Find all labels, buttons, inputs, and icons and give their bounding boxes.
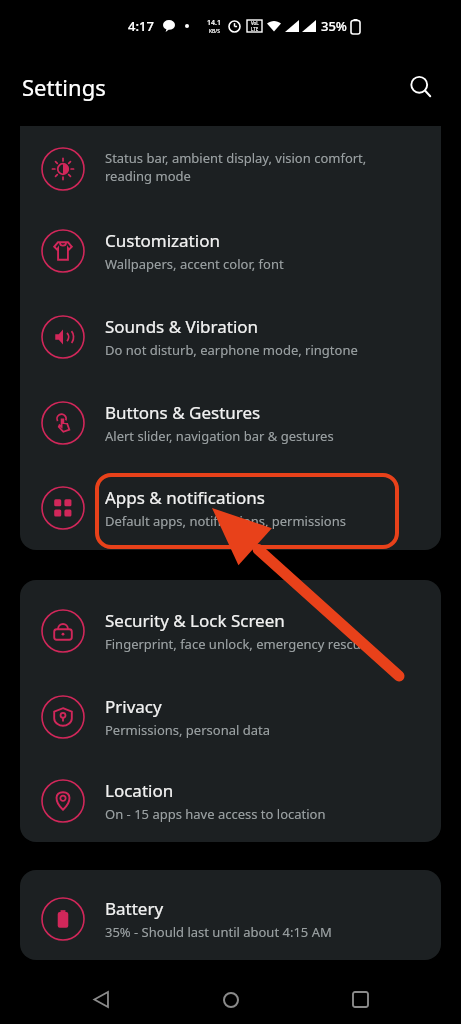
button[interactable]: Privacy	[20, 674, 441, 760]
staticText: Settings	[22, 72, 106, 102]
staticText: 4:17	[128, 17, 154, 35]
staticText: On - 15 apps have access to location	[105, 805, 326, 823]
staticText: Do not disturb, earphone mode, ringtone	[105, 341, 358, 359]
button[interactable]: Back	[72, 975, 130, 1024]
staticText: VoL	[251, 20, 259, 26]
staticText: LTE	[251, 26, 259, 32]
staticText: Status bar, ambient display, vision comf…	[105, 149, 367, 185]
staticText: 35%	[321, 17, 347, 35]
staticText: Default apps, notifications, permissions	[105, 512, 346, 530]
button[interactable]: Customization	[20, 208, 441, 294]
staticText: Privacy	[105, 695, 162, 718]
button[interactable]: Recent apps	[331, 975, 389, 1024]
staticText: 35% - Should last until about 4:15 AM	[105, 923, 332, 941]
button[interactable]: Status bar, ambient display, vision comf…	[20, 126, 441, 208]
button[interactable]: Security & Lock Screen	[20, 588, 441, 674]
staticText: Alert slider, navigation bar & gestures	[105, 427, 334, 445]
button[interactable]: Battery	[20, 878, 441, 960]
staticText: 14.1	[207, 18, 221, 28]
button[interactable]: Apps & notifications	[20, 466, 441, 550]
staticText: Apps & notifications	[105, 486, 265, 509]
staticText: Sounds & Vibration	[105, 315, 259, 338]
button[interactable]: Home	[202, 975, 260, 1024]
staticText: Fingerprint, face unlock, emergency resc…	[105, 635, 369, 653]
staticText: Security & Lock Screen	[105, 609, 285, 632]
staticText: Buttons & Gestures	[105, 401, 261, 424]
button[interactable]: Location	[20, 760, 441, 842]
button[interactable]: Sounds & Vibration	[20, 294, 441, 380]
button[interactable]: Buttons & Gestures	[20, 380, 441, 466]
staticText: Permissions, personal data	[105, 721, 270, 739]
staticText: Location	[105, 779, 174, 802]
staticText: Battery	[105, 897, 164, 920]
staticText: Wallpapers, accent color, font	[105, 255, 284, 273]
button[interactable]: Search	[399, 65, 443, 109]
staticText: KB/S	[209, 28, 220, 35]
staticText: Customization	[105, 229, 220, 252]
